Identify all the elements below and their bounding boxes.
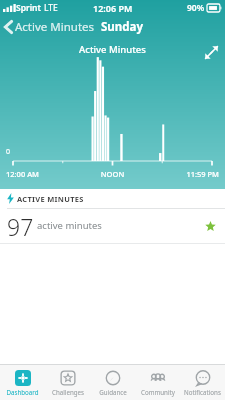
- staticText: 0: [6, 147, 11, 157]
- staticText: 97: [7, 211, 34, 242]
- staticText: 11:59 PM: [148, 169, 219, 179]
- staticText: Active Minutes: [79, 43, 146, 56]
- button[interactable]: Community: [135, 365, 180, 400]
- button[interactable]: Guidance: [90, 365, 135, 400]
- button[interactable]: Notifications: [180, 365, 225, 400]
- staticText: 12:06 PM: [93, 2, 133, 14]
- button[interactable]: Challenges: [45, 365, 90, 400]
- button[interactable]: ACTIVE MINUTES: [0, 189, 225, 244]
- staticText: Dashboard: [6, 388, 39, 396]
- button[interactable]: Dashboard: [0, 365, 45, 400]
- staticText: ACTIVE MINUTES: [17, 194, 84, 204]
- staticText: Sunday: [101, 19, 144, 35]
- button[interactable]: Expand chart: [200, 41, 222, 63]
- staticText: 90%: [187, 2, 205, 14]
- staticText: Challenges: [52, 388, 84, 396]
- staticText: NOON: [77, 169, 148, 179]
- staticText: Active Minutes: [15, 19, 95, 35]
- button[interactable]: Active Minutes: [0, 17, 101, 37]
- staticText: Sprint: [16, 2, 41, 14]
- staticText: Guidance: [99, 388, 127, 396]
- staticText: 12:00 AM: [6, 169, 77, 179]
- staticText: active minutes: [37, 219, 102, 232]
- staticText: LTE: [44, 2, 58, 14]
- staticText: Notifications: [184, 388, 221, 396]
- staticText: Community: [141, 388, 175, 396]
